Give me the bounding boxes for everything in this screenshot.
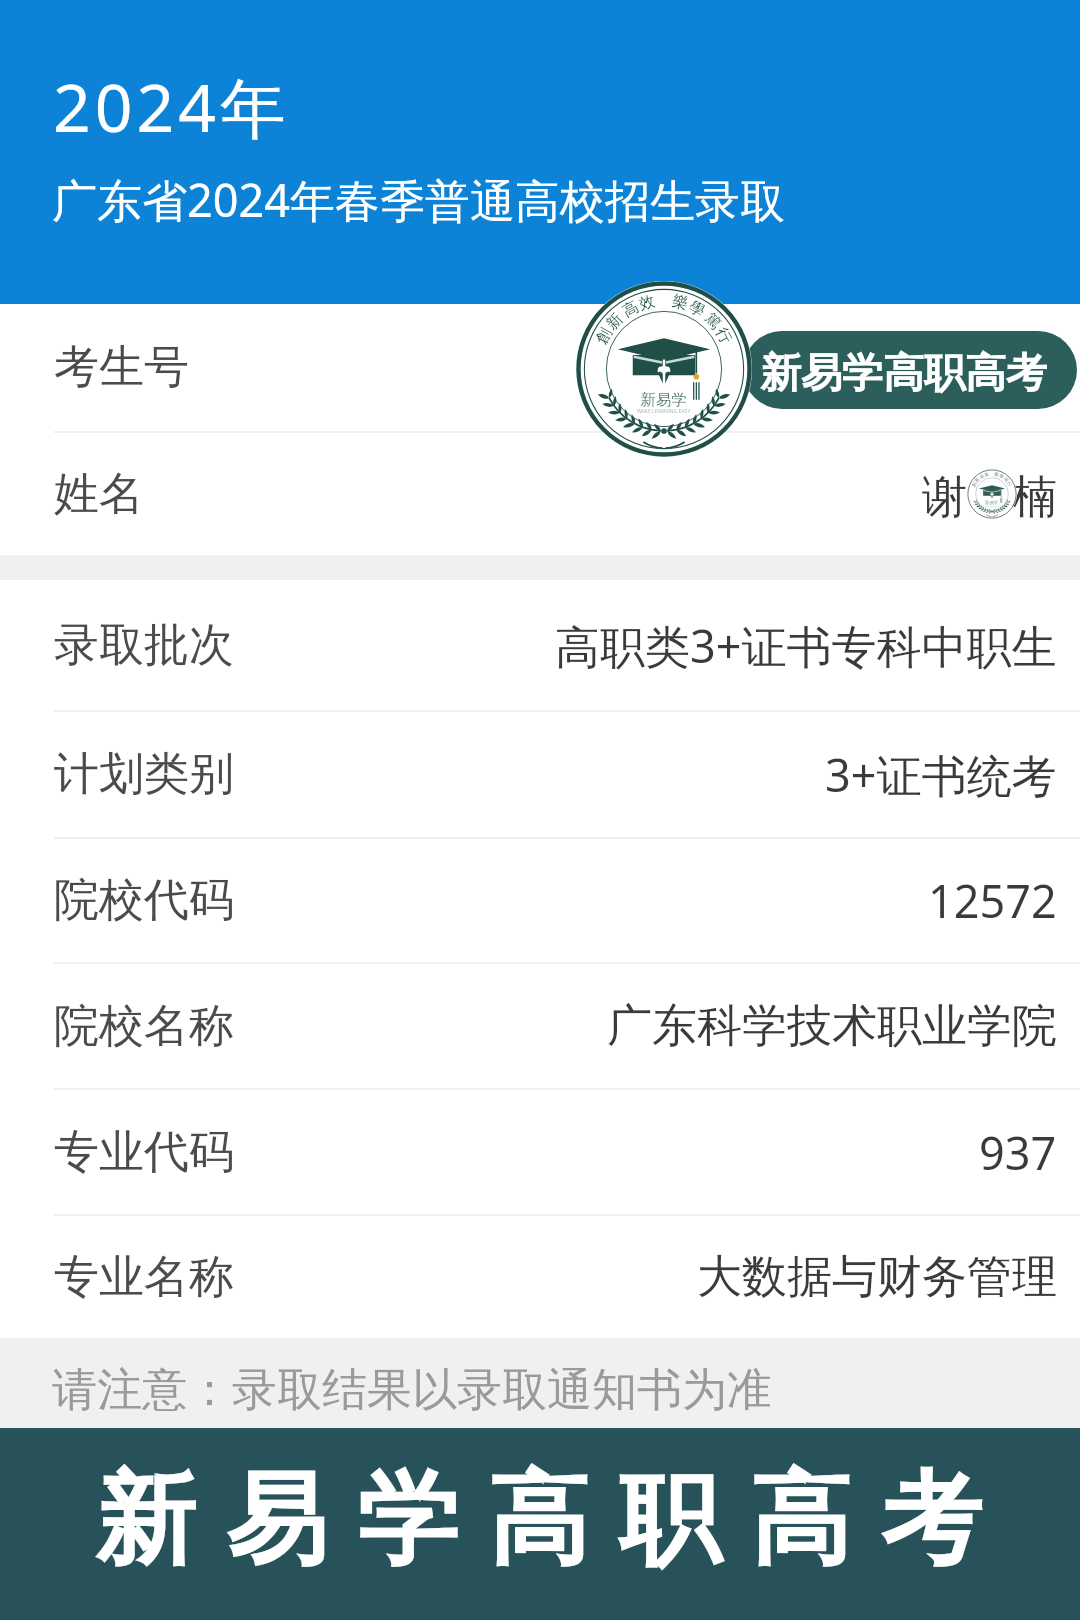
button[interactable]: 考生号 [0, 304, 1080, 431]
staticText: 专业名称 [54, 1249, 234, 1306]
staticText: 新易学高职高考 [80, 1457, 997, 1584]
button[interactable]: 新易学高职高考 [0, 1428, 1080, 1620]
button[interactable]: 专业代码 [0, 1090, 1080, 1214]
button[interactable]: 新易学高职高考 [743, 331, 1077, 409]
button[interactable]: 计划类别 [0, 712, 1080, 837]
staticText: 2024年 [53, 61, 291, 151]
staticText: 12572 [928, 870, 1057, 931]
button[interactable]: 专业名称 [0, 1216, 1080, 1338]
staticText: 院校代码 [54, 872, 234, 929]
staticText: 广东科学技术职业学院 [607, 998, 1057, 1055]
staticText: 谢 楠 [922, 464, 1057, 525]
staticText: 大数据与财务管理 [697, 1249, 1057, 1306]
staticText: 专业代码 [54, 1124, 234, 1181]
button[interactable]: 院校代码 [0, 839, 1080, 962]
staticText: 新易学高职高考 [760, 348, 1047, 400]
staticText: 广东省2024年春季普通高校招生录取 [52, 169, 785, 230]
staticText: 请注意：录取结果以录取通知书为准 [52, 1362, 772, 1419]
staticText: 院校名称 [54, 998, 234, 1055]
button[interactable]: 新易学 logo [576, 281, 752, 457]
staticText: 考生号 [54, 339, 189, 396]
staticText: 录取批次 [54, 617, 234, 674]
staticText: 计划类别 [54, 746, 234, 803]
button[interactable]: 录取批次 [0, 580, 1080, 710]
staticText: 3+证书统考 [825, 744, 1057, 805]
staticText: 937 [979, 1122, 1057, 1183]
other: 新易学 watermark [967, 469, 1017, 519]
staticText: 高职类3+证书专科中职生 [555, 615, 1057, 676]
button[interactable]: 院校名称 [0, 964, 1080, 1088]
button[interactable]: 姓名 [0, 433, 1080, 555]
staticText: 姓名 [54, 466, 144, 523]
